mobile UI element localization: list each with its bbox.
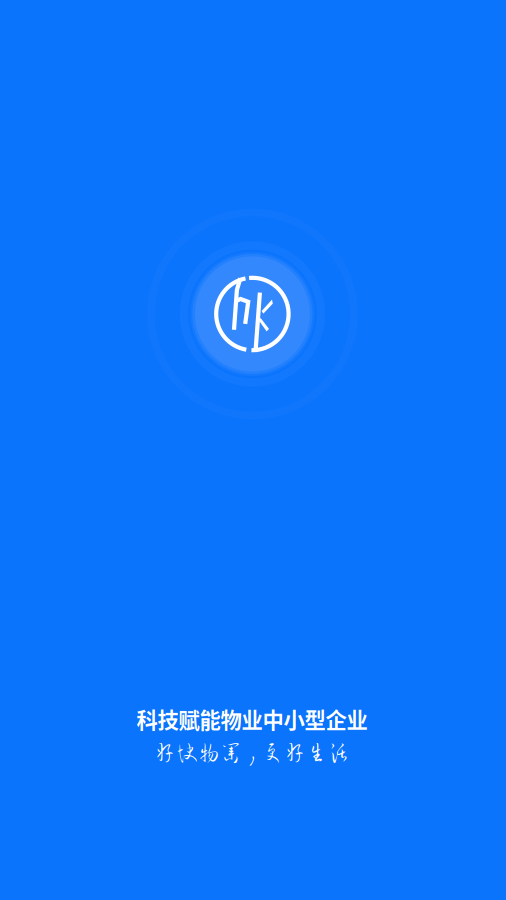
staticText: 科技赋能物业中小型企业 [136,704,367,734]
staticText: 好快物业，更好生活 [154,741,350,763]
